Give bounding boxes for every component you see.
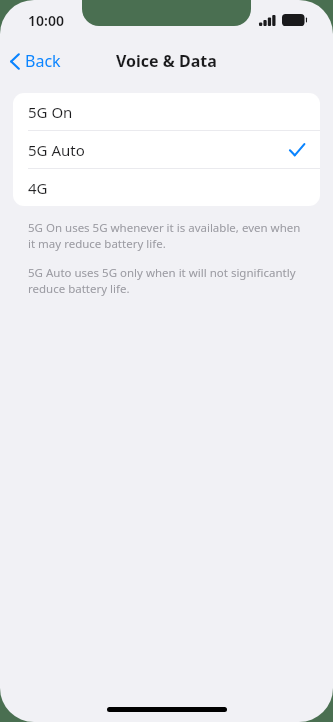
staticText: 5G Auto xyxy=(28,140,85,160)
button[interactable]: Back xyxy=(0,44,71,78)
staticText: Back xyxy=(25,50,61,72)
staticText: 4G xyxy=(28,178,48,198)
staticText: 10:00 xyxy=(28,11,64,30)
button[interactable]: 4G xyxy=(13,169,320,206)
staticText: 5G On xyxy=(28,102,73,122)
staticText: 5G Auto uses 5G only when it will not si… xyxy=(28,265,305,296)
staticText: 5G On uses 5G whenever it is available, … xyxy=(28,220,305,251)
button[interactable]: 5G Auto xyxy=(13,131,320,168)
staticText: Voice & Data xyxy=(116,50,217,72)
other: Selected xyxy=(289,143,305,157)
button[interactable]: 5G On xyxy=(13,93,320,130)
